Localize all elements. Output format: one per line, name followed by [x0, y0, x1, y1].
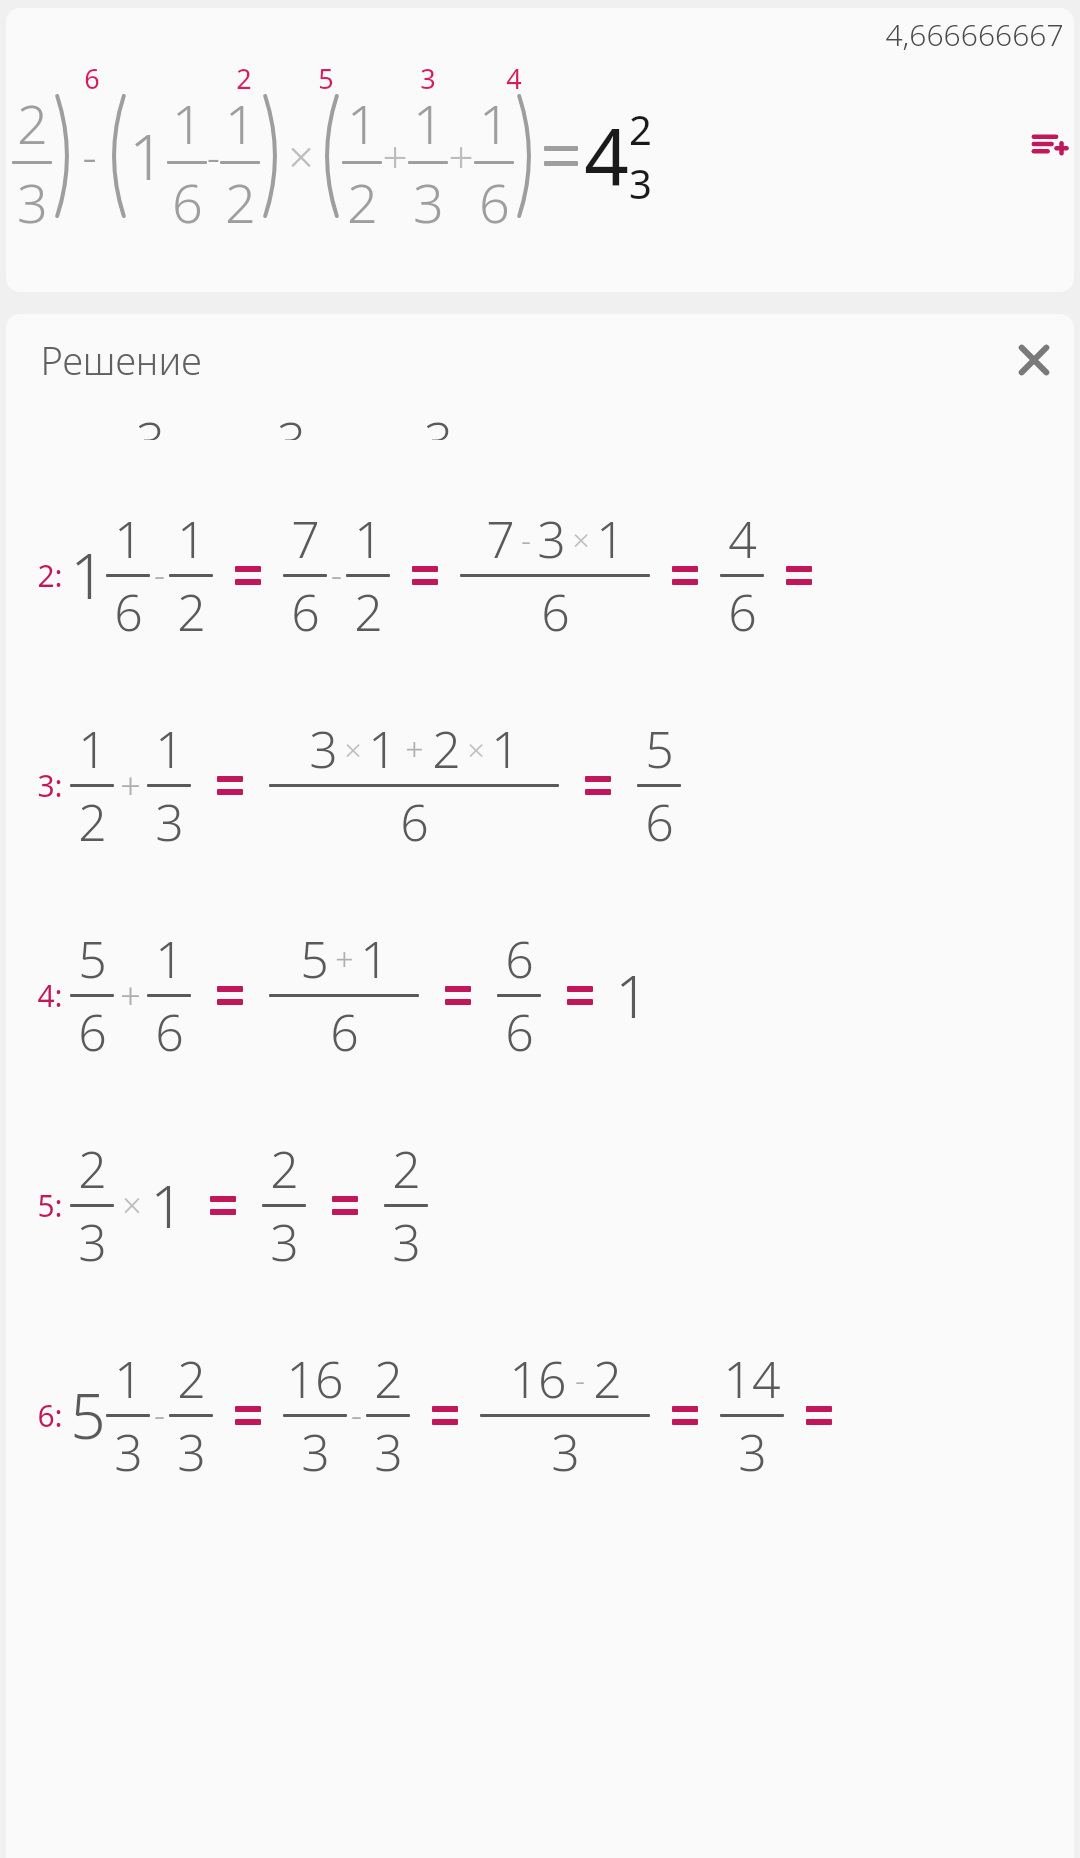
button[interactable]: 4,666666667	[6, 8, 1074, 292]
staticText: 6:	[30, 1395, 70, 1436]
staticText: 2	[78, 1135, 107, 1203]
staticText: +	[448, 126, 474, 186]
staticText: 1	[129, 114, 165, 198]
staticText: 6	[114, 578, 143, 646]
staticText: 3	[374, 1418, 403, 1486]
staticText: 1	[347, 86, 378, 160]
staticText: 1	[479, 86, 510, 160]
staticText: 1	[360, 925, 389, 993]
staticText: 6	[291, 578, 320, 646]
staticText: 1	[177, 505, 206, 573]
staticText: 3:	[30, 765, 70, 806]
button[interactable]: 6:	[6, 1310, 1074, 1520]
staticText: 2	[17, 86, 48, 160]
staticText: 5	[300, 925, 329, 993]
staticText: 3	[629, 156, 652, 210]
staticText: -	[331, 552, 342, 598]
staticText: 3	[413, 165, 444, 226]
staticText: 3	[301, 1418, 330, 1486]
staticText: 1	[596, 505, 625, 573]
staticText: 3	[17, 165, 48, 226]
staticText: 6	[172, 165, 203, 226]
staticText: Решение	[40, 334, 202, 386]
staticText: 6	[84, 60, 100, 97]
staticText: 3	[420, 60, 436, 97]
button[interactable]: 2:	[6, 470, 1074, 680]
staticText: ×	[288, 126, 314, 186]
staticText: 6	[728, 578, 757, 646]
staticText: 4:	[30, 975, 70, 1016]
staticText: 5:	[30, 1185, 70, 1226]
staticText: 6	[78, 998, 107, 1066]
staticText: +	[405, 727, 424, 771]
staticText: 3	[277, 406, 306, 440]
staticText: 2	[270, 1135, 299, 1203]
staticText: 1	[354, 505, 383, 573]
staticText: 5	[78, 925, 107, 993]
staticText: 16	[509, 1345, 567, 1413]
staticText: 6	[505, 998, 534, 1066]
staticText: 3	[78, 1208, 107, 1276]
staticText: 3	[136, 406, 165, 440]
staticText: +	[382, 126, 408, 186]
staticText: 1	[114, 505, 143, 573]
staticText: 1	[172, 86, 203, 160]
staticText: 2	[629, 102, 652, 156]
staticText: 2:	[30, 555, 70, 596]
staticText: -	[351, 1392, 362, 1438]
button[interactable]: Close	[1012, 338, 1056, 382]
staticText: 3	[177, 1418, 206, 1486]
staticText: 2	[347, 165, 378, 226]
staticText: 6	[541, 578, 570, 646]
staticText: 3	[424, 406, 453, 440]
staticText: 1	[155, 925, 184, 993]
staticText: 5	[318, 60, 334, 97]
staticText: 2	[236, 60, 252, 97]
staticText: 3	[392, 1208, 421, 1276]
button[interactable]: 5:	[6, 1100, 1074, 1310]
button[interactable]: 3:	[6, 680, 1074, 890]
staticText: 6	[155, 998, 184, 1066]
staticText: 1	[114, 1345, 143, 1413]
staticText: 3	[551, 1418, 580, 1486]
staticText: 3	[270, 1208, 299, 1276]
staticText: -	[575, 1359, 585, 1400]
staticText: 4	[584, 103, 629, 209]
staticText: -	[82, 126, 97, 186]
staticText: 1	[491, 715, 520, 783]
staticText: 3	[309, 715, 338, 783]
staticText: 3	[155, 788, 184, 856]
staticText: 6	[645, 788, 674, 856]
staticText: 1	[413, 86, 444, 160]
button[interactable]: 4:	[6, 890, 1074, 1100]
staticText: 7	[486, 505, 515, 573]
staticText: 2	[177, 1345, 206, 1413]
staticText: 16	[286, 1345, 344, 1413]
staticText: 7	[291, 505, 320, 573]
staticText: 5	[645, 715, 674, 783]
staticText: 2	[177, 578, 206, 646]
staticText: 2	[432, 715, 461, 783]
staticText: -	[154, 1392, 165, 1438]
staticText: 4	[506, 60, 522, 97]
staticText: 1	[70, 533, 106, 617]
staticText: 5	[70, 1373, 106, 1457]
staticText: 2	[225, 165, 256, 226]
staticText: 1	[78, 715, 107, 783]
staticText: 1	[225, 86, 256, 160]
staticText: 2	[374, 1345, 403, 1413]
staticText: 2	[593, 1345, 622, 1413]
staticText: -	[521, 519, 531, 560]
staticText: 1	[150, 1166, 184, 1245]
staticText: ×	[467, 729, 485, 770]
staticText: 6	[400, 788, 429, 856]
staticText: ×	[344, 729, 362, 770]
staticText: 2	[78, 788, 107, 856]
button[interactable]: Add to list	[1032, 126, 1068, 162]
staticText: 1	[615, 956, 649, 1035]
staticText: 2	[354, 578, 383, 646]
staticText: +	[335, 937, 354, 981]
staticText: 1	[368, 715, 397, 783]
staticText: 6	[330, 998, 359, 1066]
staticText: 6	[505, 925, 534, 993]
